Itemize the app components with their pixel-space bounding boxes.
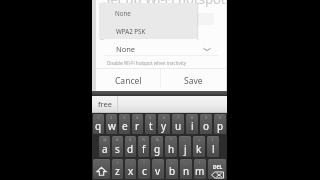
staticText: g	[154, 142, 161, 156]
staticText: free	[98, 99, 112, 109]
button[interactable]: Save	[161, 69, 226, 88]
button[interactable]: 2	[106, 114, 117, 134]
button[interactable]: 7	[172, 114, 184, 134]
staticText: Save	[184, 75, 203, 87]
button[interactable]: 1	[93, 114, 104, 134]
staticText: t	[149, 119, 153, 133]
button[interactable]: )	[112, 159, 123, 179]
button[interactable]: 5	[145, 114, 156, 134]
staticText: 3	[123, 115, 126, 120]
staticText: j	[184, 142, 187, 156]
button[interactable]: +	[193, 136, 205, 157]
staticText: *	[170, 137, 173, 142]
staticText: m	[195, 164, 205, 178]
staticText: o	[203, 119, 210, 133]
staticText: 6	[163, 115, 166, 120]
staticText: s	[115, 142, 120, 156]
staticText: +	[198, 137, 201, 142]
staticText: e	[122, 119, 128, 133]
staticText: ;	[185, 160, 187, 165]
button[interactable]: %	[138, 136, 149, 157]
staticText: _	[130, 160, 132, 165]
button[interactable]: 6	[158, 114, 170, 134]
button[interactable]: -	[179, 136, 191, 157]
button[interactable]: 8	[186, 114, 198, 134]
button[interactable]: :	[166, 159, 178, 179]
staticText: p	[217, 119, 224, 133]
staticText: DEL	[213, 164, 223, 171]
button[interactable]: (	[207, 136, 219, 157]
staticText: n	[183, 164, 190, 178]
button[interactable]: "	[138, 159, 150, 179]
staticText: 4	[136, 115, 139, 120]
staticText: y	[161, 119, 167, 133]
button[interactable]: @	[99, 136, 110, 157]
staticText: z	[115, 164, 120, 178]
staticText: k	[196, 142, 202, 156]
button[interactable]: Shift	[93, 159, 110, 179]
staticText: &	[156, 137, 159, 142]
button[interactable]: 4	[132, 114, 143, 134]
button[interactable]: 0	[214, 114, 226, 134]
staticText: @	[103, 137, 107, 142]
button[interactable]: None	[96, 42, 226, 55]
staticText: None	[116, 44, 136, 54]
staticText: 2	[110, 115, 113, 120]
staticText: "	[143, 160, 145, 165]
staticText: Cancel	[115, 75, 142, 87]
button[interactable]: None	[99, 3, 197, 39]
staticText: Set up Wi-Fi hotspot	[103, 0, 226, 8]
staticText: #	[116, 137, 119, 142]
button[interactable]: !	[194, 159, 206, 179]
button[interactable]: &	[151, 136, 163, 157]
staticText: %	[142, 137, 146, 142]
button[interactable]: Cancel	[96, 69, 160, 88]
button[interactable]: $	[125, 136, 136, 157]
staticText: None	[115, 9, 131, 17]
staticText: 1	[97, 115, 100, 120]
button[interactable]: free	[92, 96, 117, 113]
staticText: i	[191, 119, 194, 133]
staticText: :	[171, 160, 173, 165]
staticText: w	[108, 119, 116, 133]
staticText: 0	[219, 115, 222, 120]
staticText: u	[175, 119, 182, 133]
button[interactable]: Delete	[208, 159, 226, 179]
staticText: a	[102, 142, 108, 156]
staticText: '	[158, 160, 159, 165]
button[interactable]: #	[112, 136, 123, 157]
staticText: c	[142, 164, 147, 178]
staticText: q	[95, 119, 102, 133]
button[interactable]: 9	[200, 114, 212, 134]
staticText: b	[169, 164, 176, 178]
staticText: 8	[191, 115, 194, 120]
staticText: f	[142, 142, 146, 156]
staticText: Se	[100, 36, 105, 41]
staticText: x	[128, 164, 134, 178]
staticText: -	[184, 137, 186, 142]
staticText: 7	[177, 115, 180, 120]
staticText: 9	[205, 115, 208, 120]
staticText: WPA2 PSK	[116, 27, 146, 35]
staticText: (	[212, 137, 214, 142]
staticText: d	[127, 142, 134, 156]
button[interactable]: 3	[119, 114, 130, 134]
button[interactable]: ;	[180, 159, 192, 179]
staticText: v	[155, 164, 161, 178]
staticText: h	[168, 142, 175, 156]
button[interactable]: '	[152, 159, 164, 179]
staticText: Disable Wi-Fi hotspot when inactivity	[107, 60, 186, 66]
staticText: !	[199, 160, 201, 165]
staticText: $	[129, 137, 132, 142]
button[interactable]: _	[125, 159, 136, 179]
staticText: l	[212, 142, 215, 156]
staticText: r	[135, 119, 140, 133]
staticText: 5	[149, 115, 152, 120]
button[interactable]: *	[165, 136, 177, 157]
staticText: )	[117, 160, 119, 165]
